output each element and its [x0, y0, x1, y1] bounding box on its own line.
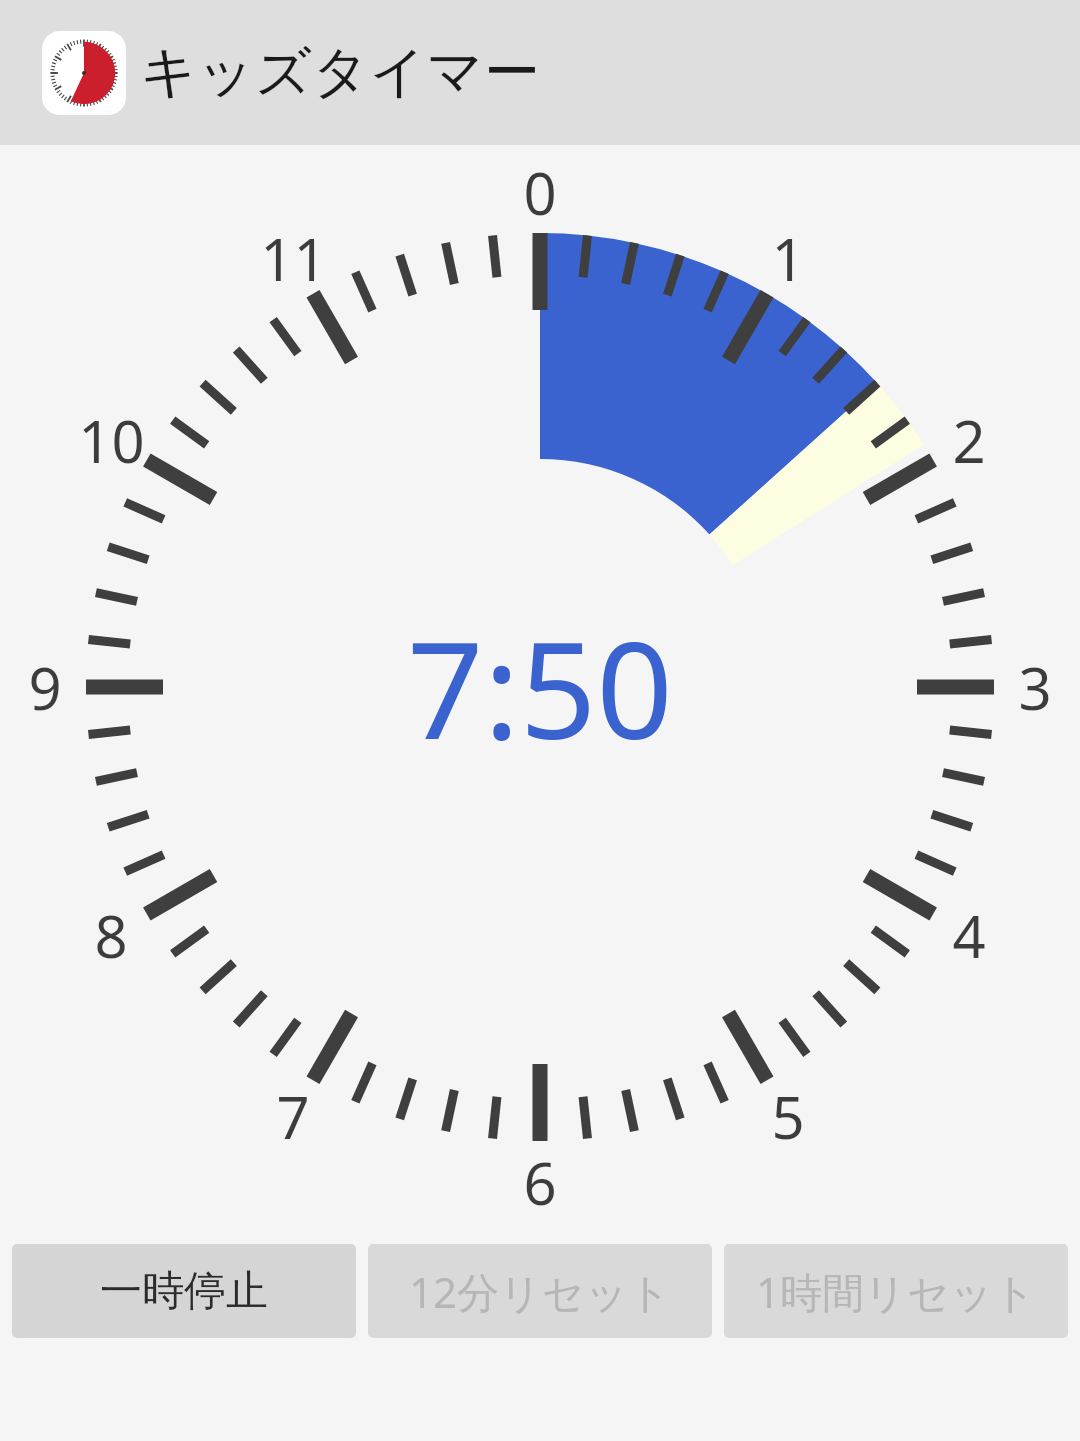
staticText: キッズタイマー	[140, 37, 540, 108]
staticText: 3	[1018, 648, 1052, 727]
button[interactable]: 一時停止	[12, 1244, 356, 1338]
staticText: 一時停止	[100, 1265, 268, 1318]
staticText: 9	[28, 648, 62, 727]
staticText: 12分リセット	[409, 1263, 671, 1320]
staticText: 1	[771, 219, 805, 298]
staticText: 8	[94, 896, 128, 975]
staticText: 6	[523, 1143, 557, 1222]
staticText: 10	[78, 401, 145, 480]
staticText: 4	[952, 896, 986, 975]
staticText: 7:50	[407, 596, 673, 779]
other: App icon	[42, 31, 126, 115]
staticText: 1時間リセット	[756, 1263, 1036, 1320]
button[interactable]: 1時間リセット	[724, 1244, 1068, 1338]
staticText: 2	[952, 401, 986, 480]
staticText: 11	[260, 219, 327, 298]
staticText: 5	[771, 1077, 805, 1156]
staticText: 7	[276, 1077, 310, 1156]
button[interactable]: 12分リセット	[368, 1244, 712, 1338]
staticText: 0	[523, 153, 557, 232]
